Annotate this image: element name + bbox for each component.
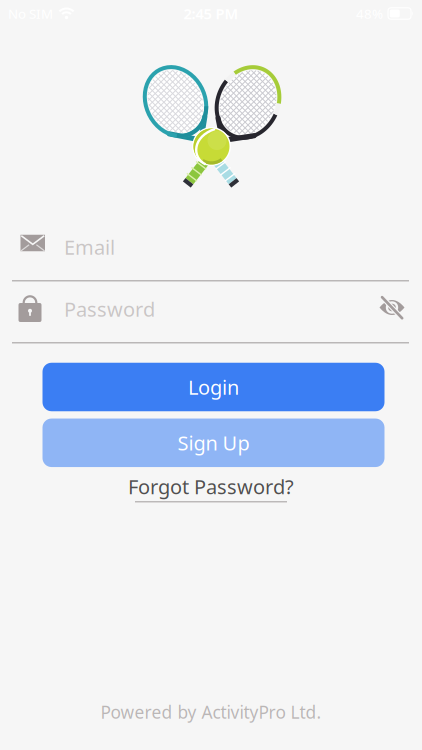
staticText: Email	[64, 234, 115, 260]
button[interactable]: Show password	[375, 292, 409, 322]
button[interactable]: Email	[0, 225, 422, 269]
staticText: Password	[64, 296, 155, 322]
button[interactable]: Password	[0, 286, 360, 332]
button[interactable]: Forgot Password?	[128, 473, 294, 500]
staticText: 2:45 PM	[183, 4, 238, 23]
button[interactable]: Sign Up	[42, 419, 384, 467]
staticText: Forgot Password?	[128, 473, 294, 500]
button[interactable]: Login	[42, 363, 384, 411]
staticText: Powered by ActivityPro Ltd.	[100, 700, 321, 723]
staticText: Login	[188, 374, 239, 400]
staticText: Sign Up	[177, 429, 249, 456]
